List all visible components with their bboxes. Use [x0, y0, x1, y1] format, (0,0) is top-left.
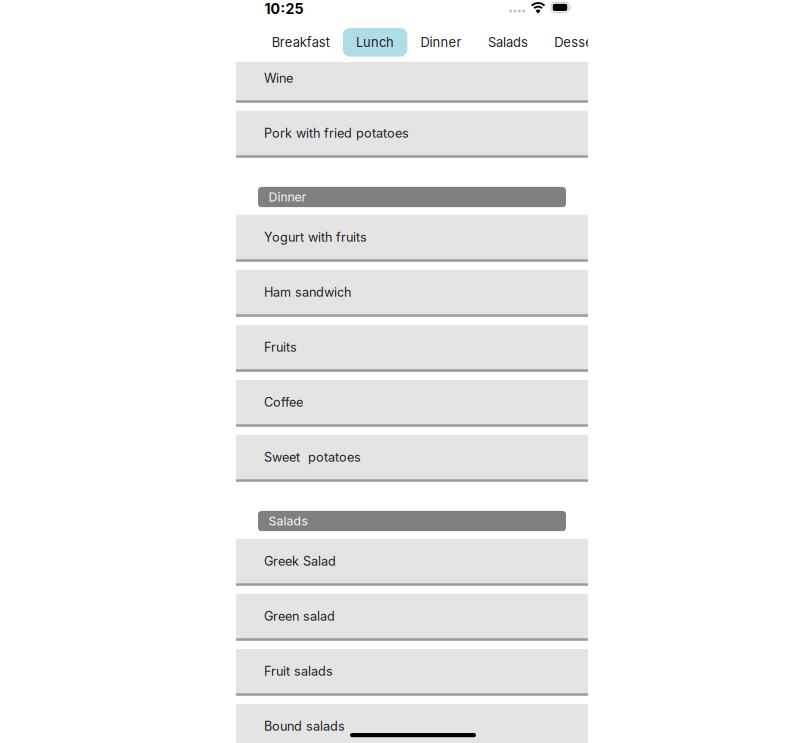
- staticText: Yogurt with fruits: [264, 229, 367, 245]
- button[interactable]: Salads: [475, 28, 541, 57]
- staticText: Wine: [264, 70, 293, 86]
- button[interactable]: Dessert: [541, 28, 615, 57]
- staticText: Greek Salad: [264, 553, 336, 569]
- staticText: Breakfast: [272, 34, 330, 50]
- staticText: 10:25: [265, 0, 304, 17]
- button[interactable]: Wine: [236, 56, 588, 100]
- button[interactable]: Lunch: [343, 28, 407, 57]
- button[interactable]: Green salad: [236, 594, 588, 638]
- button[interactable]: Ham sandwich: [236, 270, 588, 314]
- button[interactable]: Bound salads: [236, 704, 588, 743]
- staticText: Sweet potatoes: [264, 449, 361, 465]
- staticText: Salads: [268, 514, 307, 528]
- staticText: Fruits: [264, 339, 297, 355]
- button[interactable]: Sweet potatoes: [236, 435, 588, 479]
- button[interactable]: Fruits: [236, 325, 588, 369]
- staticText: Ham sandwich: [264, 284, 351, 300]
- button[interactable]: Dinner: [407, 28, 475, 57]
- staticText: Fruit salads: [264, 663, 333, 679]
- staticText: Green salad: [264, 608, 335, 624]
- button[interactable]: Pork with fried potatoes: [236, 111, 588, 155]
- staticText: Dessert: [554, 34, 602, 50]
- staticText: Pork with fried potatoes: [264, 125, 409, 141]
- button[interactable]: Yogurt with fruits: [236, 215, 588, 259]
- button[interactable]: Greek Salad: [236, 539, 588, 583]
- staticText: Dinner: [420, 34, 461, 50]
- staticText: Salads: [488, 34, 528, 50]
- staticText: Lunch: [356, 34, 394, 50]
- button[interactable]: Breakfast: [258, 28, 343, 57]
- staticText: Dinner: [268, 190, 306, 204]
- button[interactable]: Fruit salads: [236, 649, 588, 693]
- button[interactable]: Coffee: [236, 380, 588, 424]
- staticText: Bound salads: [264, 718, 345, 734]
- staticText: Coffee: [264, 394, 303, 410]
